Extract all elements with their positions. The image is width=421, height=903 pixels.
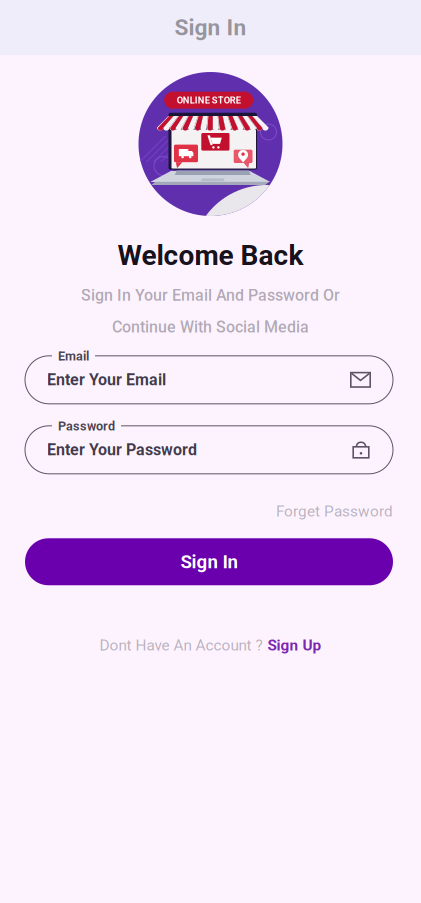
staticText: Continue With Social Media	[112, 318, 309, 336]
staticText: Welcome Back	[117, 239, 303, 272]
button[interactable]: Sign In	[25, 538, 393, 585]
staticText: Email	[58, 349, 89, 364]
staticText: ONLINE STORE	[177, 95, 241, 106]
staticText: Forget Password	[276, 502, 393, 520]
staticText: Sign Up	[267, 636, 321, 654]
staticText: Sign In	[180, 551, 237, 573]
button[interactable]: Sign Up	[267, 636, 321, 654]
staticText: Sign In Your Email And Password Or	[81, 286, 340, 305]
staticText: Dont Have An Account ?	[99, 636, 262, 654]
staticText: Password	[58, 419, 115, 434]
staticText: Enter Your Password	[47, 440, 197, 459]
staticText: Enter Your Email	[47, 370, 166, 389]
button[interactable]: Forget Password	[276, 502, 393, 520]
staticText: Sign In	[174, 14, 246, 41]
